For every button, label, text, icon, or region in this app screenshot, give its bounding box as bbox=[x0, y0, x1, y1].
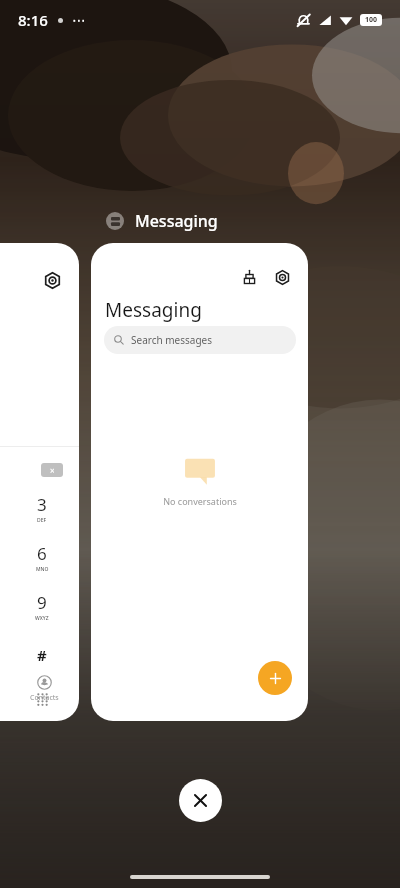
button[interactable]: 9 bbox=[25, 591, 59, 622]
button[interactable]: Backspace bbox=[41, 463, 63, 477]
button[interactable]: Search messages bbox=[104, 326, 296, 354]
staticText: Search messages bbox=[131, 333, 213, 347]
button[interactable]: Settings bbox=[270, 265, 294, 289]
staticText: No conversations bbox=[163, 495, 237, 507]
staticText: × bbox=[50, 465, 55, 476]
staticText: 100 bbox=[365, 15, 378, 25]
staticText: 3 bbox=[37, 493, 47, 516]
button[interactable]: New message bbox=[258, 661, 292, 695]
staticText: ⋯ bbox=[72, 12, 86, 28]
button[interactable]: 3 bbox=[25, 493, 59, 524]
staticText: # bbox=[37, 645, 47, 665]
staticText: MNO bbox=[36, 566, 49, 573]
staticText: 8:16 bbox=[18, 10, 48, 30]
other: Split screen bbox=[106, 212, 124, 230]
staticText: Contacts bbox=[30, 693, 59, 703]
button[interactable]: Clean up bbox=[237, 265, 261, 289]
button[interactable]: Split screen bbox=[104, 208, 220, 234]
button[interactable]: # bbox=[29, 642, 55, 668]
button[interactable]: Clear all bbox=[179, 779, 222, 822]
button[interactable]: Settings bbox=[41, 269, 63, 291]
button[interactable]: Contacts bbox=[30, 675, 59, 703]
staticText: DEF bbox=[37, 517, 47, 524]
staticText: WXYZ bbox=[35, 615, 49, 622]
staticText: 9 bbox=[37, 591, 47, 614]
staticText: Messaging bbox=[135, 210, 218, 232]
button[interactable]: 6 bbox=[25, 542, 59, 573]
staticText: Messaging bbox=[105, 297, 202, 323]
button[interactable]: Clean up bbox=[91, 243, 308, 721]
button[interactable]: Hide keypad bbox=[29, 686, 55, 712]
staticText: 6 bbox=[37, 542, 47, 565]
button[interactable]: Settings bbox=[0, 243, 79, 721]
